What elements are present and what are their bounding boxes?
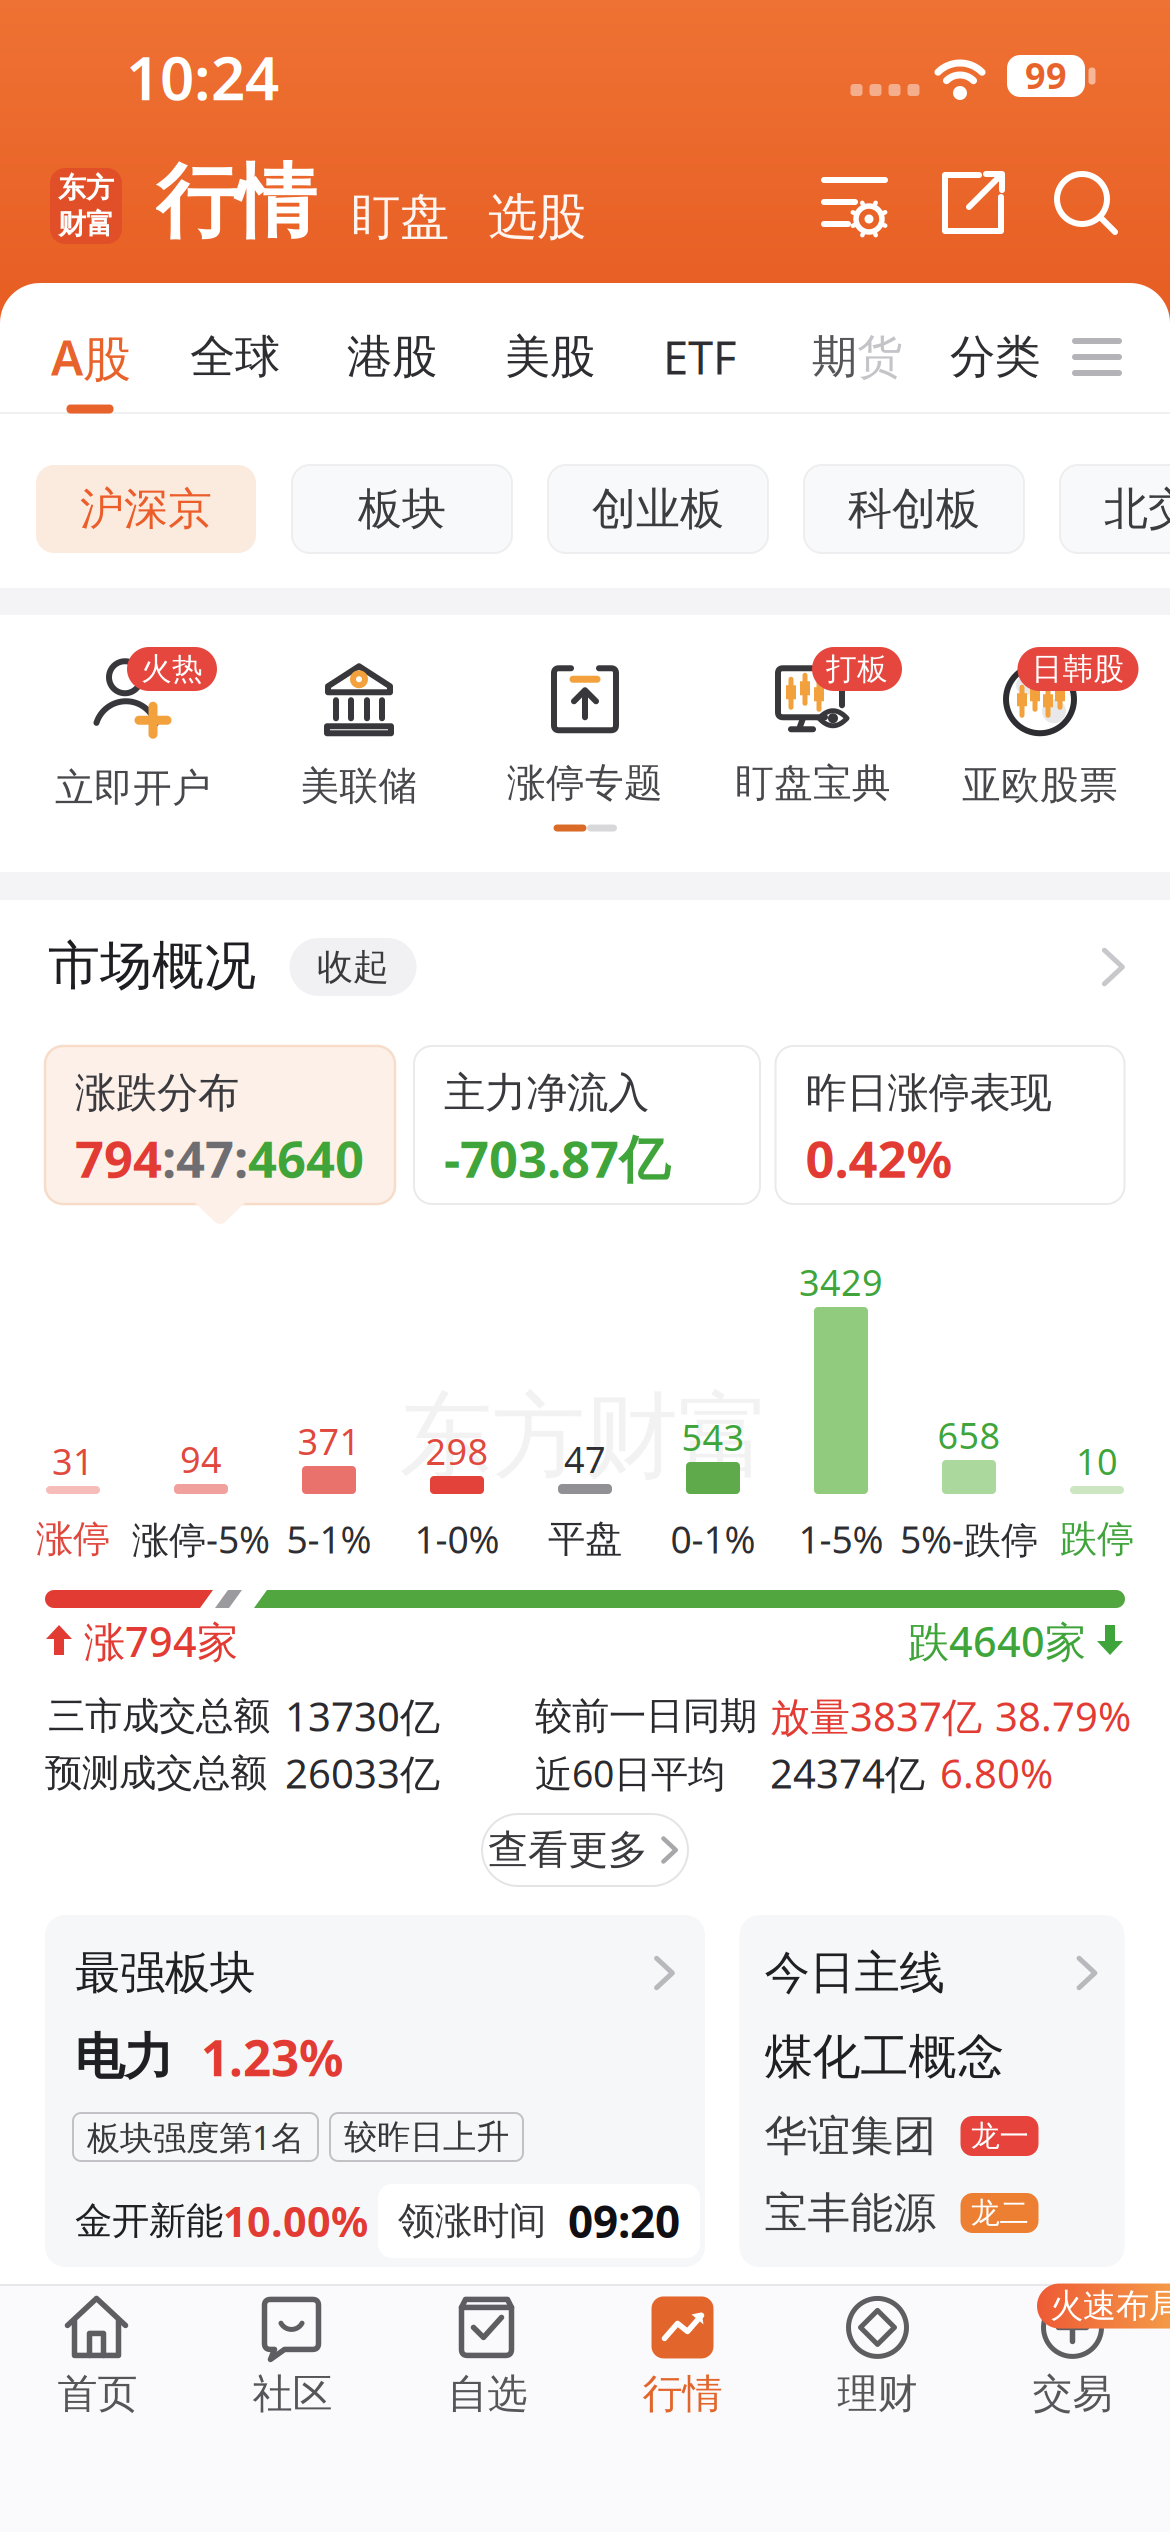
staticText: 31 — [52, 1437, 94, 1485]
staticText: 47 — [564, 1435, 606, 1483]
staticText: 宝丰能源 — [764, 2187, 936, 2239]
button[interactable]: 自选 — [397, 2287, 577, 2427]
button[interactable]: 盯盘宝典 — [700, 641, 926, 831]
staticText: 市场概况 — [48, 934, 256, 998]
button[interactable]: 交易 — [982, 2287, 1162, 2427]
button[interactable]: 创业板 — [548, 465, 768, 553]
button[interactable]: 板块设置 — [823, 175, 887, 231]
button[interactable]: 分享 — [939, 171, 1003, 235]
button[interactable]: 期 — [797, 312, 917, 402]
staticText: 东方财富 — [399, 1380, 771, 1494]
staticText: 10:24 — [126, 37, 279, 117]
staticText: 盯盘宝典 — [735, 759, 891, 807]
staticText: 首页 — [57, 2369, 137, 2418]
button[interactable]: 美股 — [490, 312, 610, 402]
staticText: 美联储 — [300, 762, 417, 810]
button[interactable]: 科创板 — [804, 465, 1024, 553]
staticText: 1-0% — [414, 1514, 499, 1564]
staticText: 社区 — [252, 2369, 332, 2418]
button[interactable]: 亚欧股票 — [927, 641, 1153, 831]
button[interactable]: 美联储 — [246, 641, 472, 831]
button[interactable]: 北交所 — [1060, 465, 1170, 553]
staticText: 放量3837亿 — [770, 1689, 982, 1742]
button[interactable]: 今日主线 — [739, 1915, 1124, 2267]
button[interactable]: 昨日涨停表现 — [775, 1046, 1124, 1204]
staticText: 10 — [1076, 1437, 1118, 1485]
staticText: 电力 — [75, 2027, 173, 2087]
staticText: 0.42% — [805, 1124, 952, 1192]
button[interactable]: 社区 — [202, 2287, 382, 2427]
staticText: 港股 — [347, 329, 437, 385]
button[interactable]: 理财 — [787, 2287, 967, 2427]
staticText: 99 — [1025, 51, 1067, 99]
staticText: 东方 — [58, 171, 114, 205]
staticText: 华谊集团 — [764, 2110, 936, 2162]
staticText: 美股 — [505, 329, 595, 385]
staticText: 科创板 — [848, 482, 980, 536]
staticText: 298 — [425, 1427, 488, 1475]
staticText: 较前一日同期 — [535, 1693, 757, 1739]
button[interactable]: 盯盘 — [330, 182, 470, 252]
button[interactable]: 涨停专题 — [472, 641, 698, 831]
button[interactable]: 最强板块 — [45, 1915, 705, 2267]
staticText: 1-5% — [798, 1514, 883, 1564]
staticText: ETF — [663, 327, 737, 387]
button[interactable]: 更多分类 — [1075, 337, 1119, 377]
staticText: -703.87亿 — [444, 1124, 670, 1192]
button[interactable]: 行情 — [592, 2287, 772, 2427]
staticText: 5-1% — [286, 1514, 371, 1564]
staticText: 行情 — [642, 2369, 722, 2418]
button[interactable]: 首页 — [7, 2287, 187, 2427]
staticText: 658 — [937, 1411, 1000, 1459]
button[interactable]: 查看市场概况 — [1094, 945, 1134, 989]
staticText: 火热 — [141, 650, 203, 688]
staticText: 选股 — [488, 187, 586, 247]
staticText: 预测成交总额 — [45, 1750, 267, 1796]
staticText: 24374亿 — [770, 1746, 925, 1799]
staticText: A股 — [51, 325, 131, 389]
staticText: 板块强度第1名 — [87, 2115, 304, 2159]
staticText: 期 — [812, 329, 857, 385]
staticText: 跌停 — [1060, 1516, 1134, 1562]
button[interactable]: 分类 — [935, 312, 1055, 402]
staticText: 亚欧股票 — [962, 761, 1118, 809]
staticText: 沪深京 — [80, 482, 212, 536]
staticText: 09:20 — [568, 2192, 680, 2250]
button[interactable]: 立即开户 — [20, 641, 246, 831]
staticText: 货 — [857, 329, 902, 385]
button[interactable]: ETF — [645, 312, 755, 402]
staticText: 领涨时间 — [398, 2198, 546, 2244]
button[interactable]: A股 — [36, 312, 146, 402]
button[interactable]: 选股 — [467, 182, 607, 252]
staticText: 较昨日上升 — [344, 2116, 509, 2157]
staticText: 38.79% — [995, 1689, 1131, 1742]
staticText: 理财 — [837, 2369, 917, 2418]
staticText: 涨794家 — [84, 1614, 238, 1668]
button[interactable]: 查看更多 — [482, 1814, 688, 1886]
staticText: 主力净流入 — [444, 1068, 649, 1118]
staticText: 1.23% — [201, 2024, 343, 2090]
button[interactable]: 主力净流入 — [414, 1046, 760, 1204]
button[interactable]: 搜索 — [1054, 171, 1118, 235]
staticText: 财富 — [58, 207, 114, 241]
button[interactable]: 港股 — [332, 312, 452, 402]
staticText: 查看更多 — [488, 1825, 648, 1874]
button[interactable]: 全球 — [175, 312, 295, 402]
staticText: 行情 — [156, 153, 316, 251]
staticText: 煤化工概念 — [764, 2027, 1004, 2086]
staticText: 543 — [681, 1413, 744, 1461]
staticText: 自选 — [447, 2369, 527, 2418]
staticText: 794 — [75, 1124, 162, 1192]
staticText: 371 — [297, 1417, 360, 1465]
staticText: 立即开户 — [55, 764, 211, 812]
button[interactable]: 收起 — [289, 938, 416, 996]
staticText: 3429 — [799, 1258, 883, 1306]
staticText: 今日主线 — [764, 1945, 944, 2001]
button[interactable]: 沪深京 — [36, 465, 256, 553]
staticText: 13730亿 — [285, 1689, 440, 1742]
staticText: 涨停-5% — [132, 1514, 270, 1564]
button[interactable]: 涨跌分布 — [45, 1046, 395, 1204]
staticText: 平盘 — [548, 1516, 622, 1562]
staticText: 创业板 — [592, 482, 724, 536]
button[interactable]: 板块 — [292, 465, 512, 553]
